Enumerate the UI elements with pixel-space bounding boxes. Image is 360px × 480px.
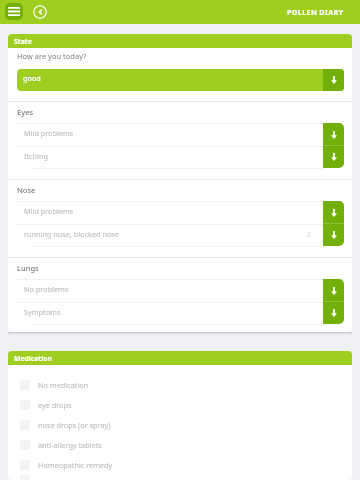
- button[interactable]: Itching: [8, 146, 352, 168]
- button[interactable]: Symptoms: [8, 302, 352, 324]
- button[interactable]: anti-allergy tablets: [8, 435, 352, 455]
- button[interactable]: Menu: [5, 3, 23, 20]
- button[interactable]: No medication: [8, 375, 352, 395]
- button[interactable]: Choose Symptoms: [323, 301, 344, 324]
- staticText: Mild problems: [24, 128, 323, 138]
- staticText: Itching: [24, 151, 323, 161]
- staticText: anti-allergy tablets: [38, 440, 102, 450]
- staticText: eye drops: [38, 400, 72, 410]
- button[interactable]: Back: [33, 5, 47, 19]
- button[interactable]: good: [17, 69, 344, 91]
- staticText: Nose: [17, 185, 36, 195]
- button[interactable]: Mild problems: [8, 123, 352, 146]
- button[interactable]: Mild problems: [8, 201, 352, 224]
- button[interactable]: nose drops (or spray): [8, 415, 352, 435]
- staticText: nose drops (or spray): [38, 420, 111, 430]
- staticText: good: [23, 73, 41, 83]
- staticText: 2: [307, 230, 312, 240]
- staticText: State: [14, 37, 32, 46]
- button[interactable]: Choose Mild problems: [323, 201, 344, 224]
- button[interactable]: eye drops: [8, 395, 352, 415]
- button[interactable]: Homeopathic remedy: [8, 455, 352, 475]
- staticText: No problems: [24, 284, 323, 294]
- staticText: Homeopathic remedy: [38, 460, 113, 470]
- button[interactable]: Choose No problems: [323, 279, 344, 302]
- button[interactable]: No problems: [8, 279, 352, 302]
- staticText: Lungs: [17, 263, 39, 273]
- staticText: Eyes: [17, 107, 34, 117]
- staticText: Mild problems: [24, 206, 323, 216]
- staticText: running nose, blocked nose: [24, 229, 307, 239]
- staticText: Medication: [14, 354, 53, 363]
- button[interactable]: Choose Mild problems: [323, 123, 344, 146]
- button[interactable]: Choose Itching: [323, 145, 344, 168]
- staticText: POLLEN DIARY: [287, 7, 344, 17]
- button[interactable]: running nose, blocked nose: [8, 224, 352, 246]
- staticText: How are you today?: [17, 51, 87, 61]
- staticText: No medication: [38, 380, 89, 390]
- staticText: Symptoms: [24, 307, 323, 317]
- button[interactable]: Choose running nose, blocked nose: [323, 223, 344, 246]
